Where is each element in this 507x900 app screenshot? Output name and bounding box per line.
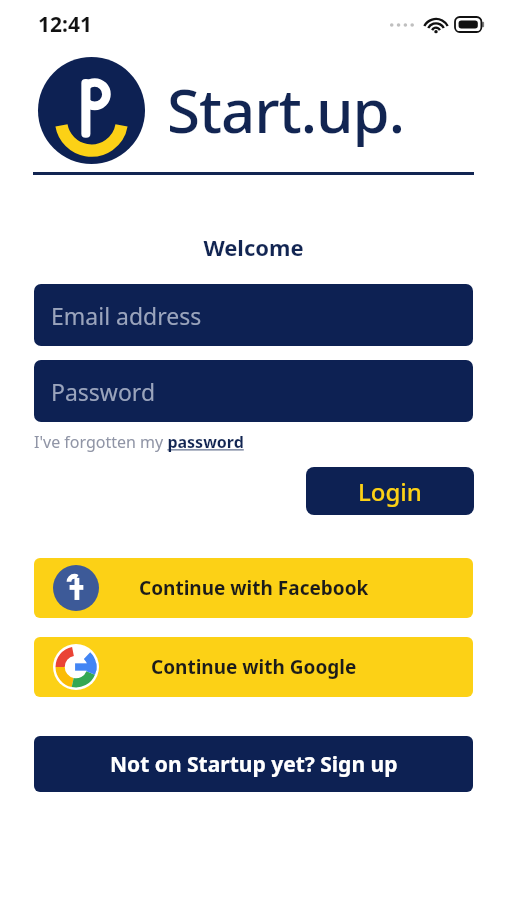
button[interactable]: Facebook: [34, 558, 473, 618]
staticText: 12:41: [38, 10, 92, 39]
button[interactable]: Login: [306, 467, 474, 515]
button[interactable]: Google: [34, 637, 473, 697]
other: Google: [53, 644, 99, 690]
staticText: Password: [51, 376, 156, 407]
staticText: Continue with Google: [151, 654, 357, 680]
button[interactable]: Email address: [34, 284, 473, 346]
staticText: Login: [358, 475, 422, 508]
staticText: Welcome: [0, 232, 507, 262]
button[interactable]: I've forgotten my password: [34, 431, 244, 453]
staticText: Continue with Facebook: [139, 575, 369, 601]
staticText: Not on Startup yet? Sign up: [110, 750, 398, 779]
button[interactable]: Not on Startup yet? Sign up: [34, 736, 473, 792]
staticText: Email address: [51, 300, 202, 331]
button[interactable]: Password: [34, 360, 473, 422]
staticText: I've forgotten my password: [34, 431, 244, 453]
other: Facebook: [53, 565, 99, 611]
staticText: Start.up.: [167, 69, 405, 151]
